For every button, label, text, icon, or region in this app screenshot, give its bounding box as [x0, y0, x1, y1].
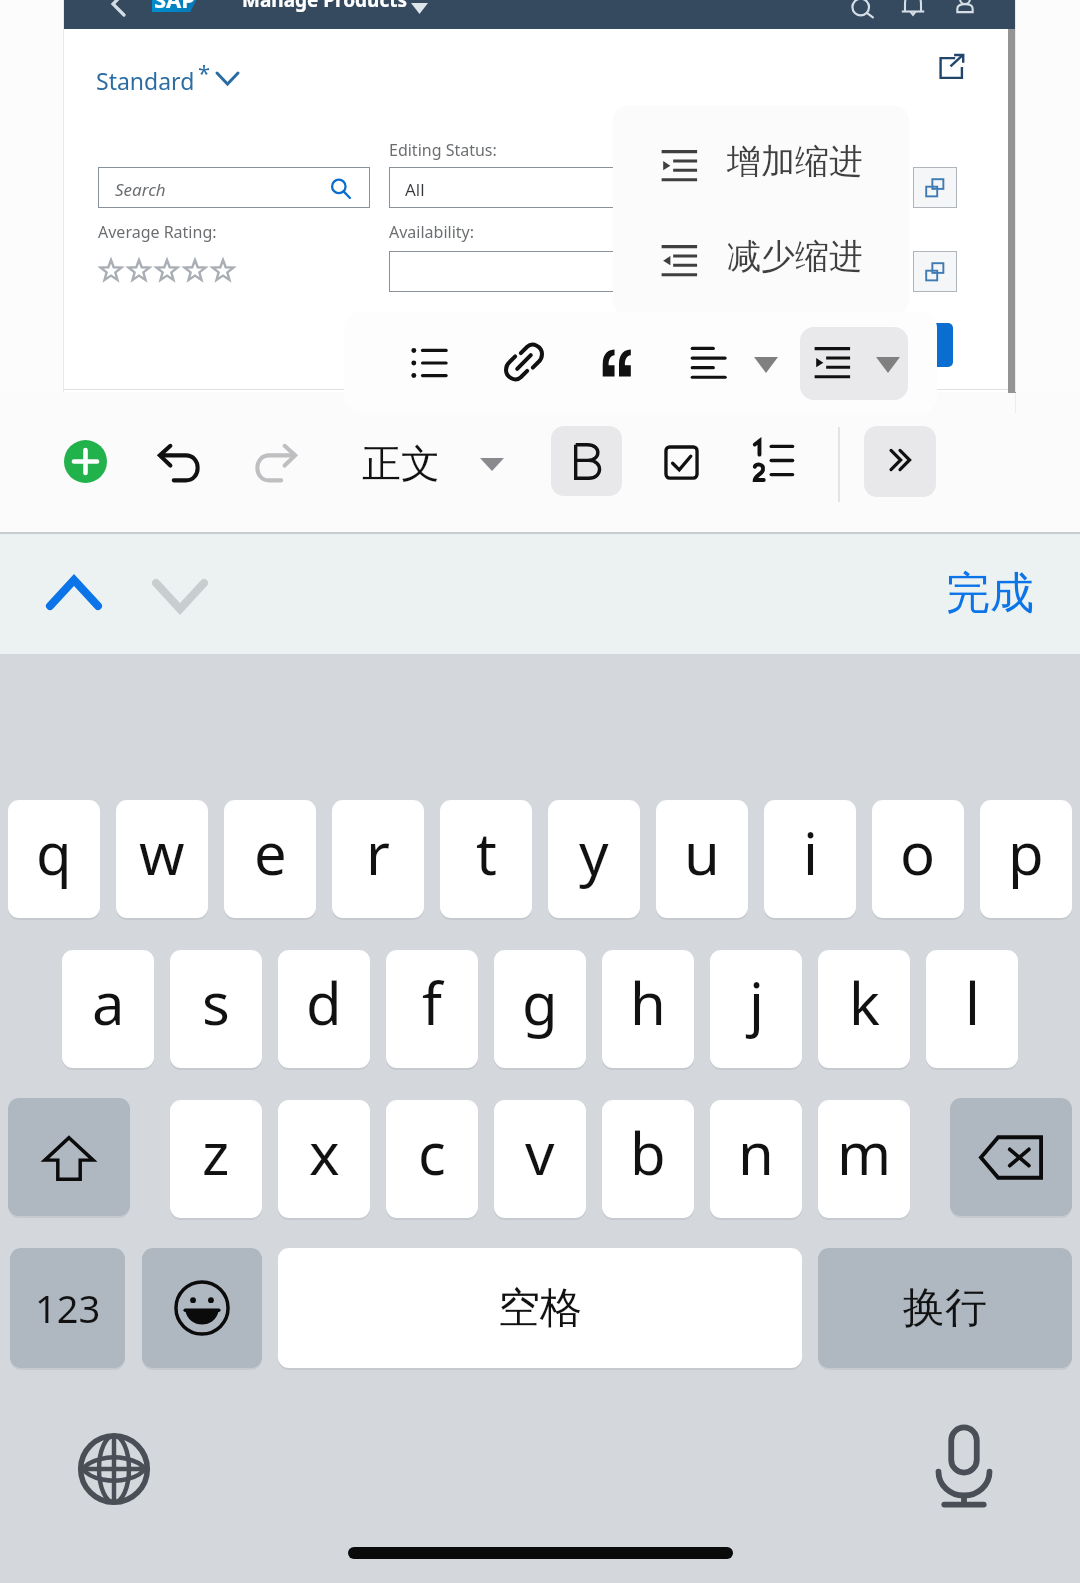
button[interactable]: Quote — [599, 345, 636, 382]
staticText: n — [738, 1113, 774, 1192]
staticText: s — [202, 963, 230, 1042]
button[interactable]: Numbers — [10, 1248, 125, 1368]
button[interactable]: v — [494, 1100, 586, 1218]
button[interactable]: Align — [690, 344, 727, 381]
button[interactable]: g — [494, 950, 586, 1068]
button[interactable]: Standard — [96, 65, 195, 96]
staticText: u — [684, 813, 720, 892]
button[interactable]: Search — [846, 0, 878, 13]
button[interactable]: r — [332, 800, 424, 918]
button[interactable]: Indent options — [800, 327, 908, 400]
staticText: 减少缩进 — [727, 235, 863, 278]
staticText: b — [630, 1113, 666, 1192]
button[interactable]: Notifications — [897, 0, 929, 13]
button[interactable]: SAP — [152, 0, 205, 12]
button[interactable]: Backspace — [950, 1098, 1072, 1216]
button[interactable]: t — [440, 800, 532, 918]
button[interactable]: Next field — [136, 557, 224, 635]
button[interactable]: s — [170, 950, 262, 1068]
staticText: Average Rating: — [98, 221, 217, 243]
button[interactable]: Value help — [913, 251, 957, 292]
button[interactable]: Manage Products — [242, 0, 408, 13]
button[interactable]: Undo — [156, 441, 204, 489]
button[interactable]: f — [386, 950, 478, 1068]
button[interactable]: Change keyboard — [72, 1427, 156, 1511]
button[interactable]: Share — [934, 50, 968, 84]
staticText: All — [405, 178, 425, 201]
button[interactable]: Shift — [8, 1098, 130, 1216]
staticText: f — [422, 963, 442, 1042]
staticText: e — [254, 813, 287, 892]
button[interactable]: k — [818, 950, 910, 1068]
button[interactable]: Checkbox list — [663, 444, 700, 481]
staticText: Search — [115, 178, 166, 201]
button[interactable]: o — [872, 800, 964, 918]
staticText: v — [525, 1113, 555, 1192]
staticText: a — [92, 963, 125, 1042]
staticText: z — [202, 1113, 230, 1192]
button[interactable]: Previous field — [30, 554, 118, 632]
button[interactable]: e — [224, 800, 316, 918]
staticText: k — [849, 963, 880, 1042]
button[interactable]: Space — [278, 1248, 802, 1368]
button[interactable]: j — [710, 950, 802, 1068]
button[interactable]: Account — [949, 0, 981, 13]
button[interactable]: Value help — [913, 167, 957, 208]
button[interactable]: w — [116, 800, 208, 918]
staticText: w — [139, 813, 185, 892]
staticText: t — [476, 813, 497, 892]
staticText: y — [579, 813, 609, 892]
staticText: Editing Status: — [389, 139, 497, 161]
staticText: r — [366, 813, 390, 892]
button[interactable]: Add — [64, 440, 107, 483]
button[interactable]: z — [170, 1100, 262, 1218]
button[interactable] — [551, 426, 622, 496]
staticText: SAP — [154, 0, 196, 13]
button[interactable]: 增加缩进 — [613, 116, 909, 210]
button[interactable]: Bulleted list — [410, 344, 448, 382]
button[interactable]: n — [710, 1100, 802, 1218]
button[interactable]: b — [602, 1100, 694, 1218]
button[interactable]: u — [656, 800, 748, 918]
staticText: l — [965, 963, 980, 1042]
staticText: 完成 — [946, 566, 1034, 621]
staticText: * — [198, 57, 211, 87]
staticText: h — [630, 963, 666, 1042]
button[interactable]: h — [602, 950, 694, 1068]
button[interactable]: q — [8, 800, 100, 918]
staticText: 空格 — [498, 1282, 582, 1335]
button[interactable]: 正文 — [362, 439, 440, 488]
button[interactable]: Return — [818, 1248, 1072, 1368]
button[interactable]: Go — [895, 323, 953, 367]
button[interactable]: All — [389, 167, 679, 208]
button[interactable]: Link — [504, 342, 544, 382]
button[interactable]: c — [386, 1100, 478, 1218]
button[interactable]: More — [864, 426, 936, 497]
button[interactable]: p — [980, 800, 1072, 918]
staticText: m — [837, 1113, 892, 1192]
staticText: p — [1008, 813, 1044, 892]
button[interactable]: Dictation — [922, 1424, 1006, 1508]
button[interactable]: a — [62, 950, 154, 1068]
staticText: q — [36, 813, 72, 892]
button[interactable]: Emoji — [142, 1248, 262, 1368]
button[interactable] — [97, 258, 237, 284]
button[interactable]: Indent — [814, 345, 850, 381]
button[interactable]: i — [764, 800, 856, 918]
staticText: c — [418, 1113, 446, 1192]
button[interactable]: Redo — [251, 441, 299, 489]
staticText: g — [522, 963, 558, 1042]
button[interactable]: 完成 — [930, 558, 1050, 628]
button[interactable]: d — [278, 950, 370, 1068]
button[interactable]: m — [818, 1100, 910, 1218]
staticText: 123 — [35, 1282, 101, 1334]
button[interactable]: l — [926, 950, 1018, 1068]
button[interactable]: 减少缩进 — [613, 211, 909, 305]
button[interactable]: Numbered list — [754, 441, 793, 480]
button[interactable] — [389, 251, 679, 292]
staticText: j — [749, 963, 764, 1042]
button[interactable]: x — [278, 1100, 370, 1218]
button[interactable]: y — [548, 800, 640, 918]
button[interactable]: Search — [98, 167, 370, 208]
